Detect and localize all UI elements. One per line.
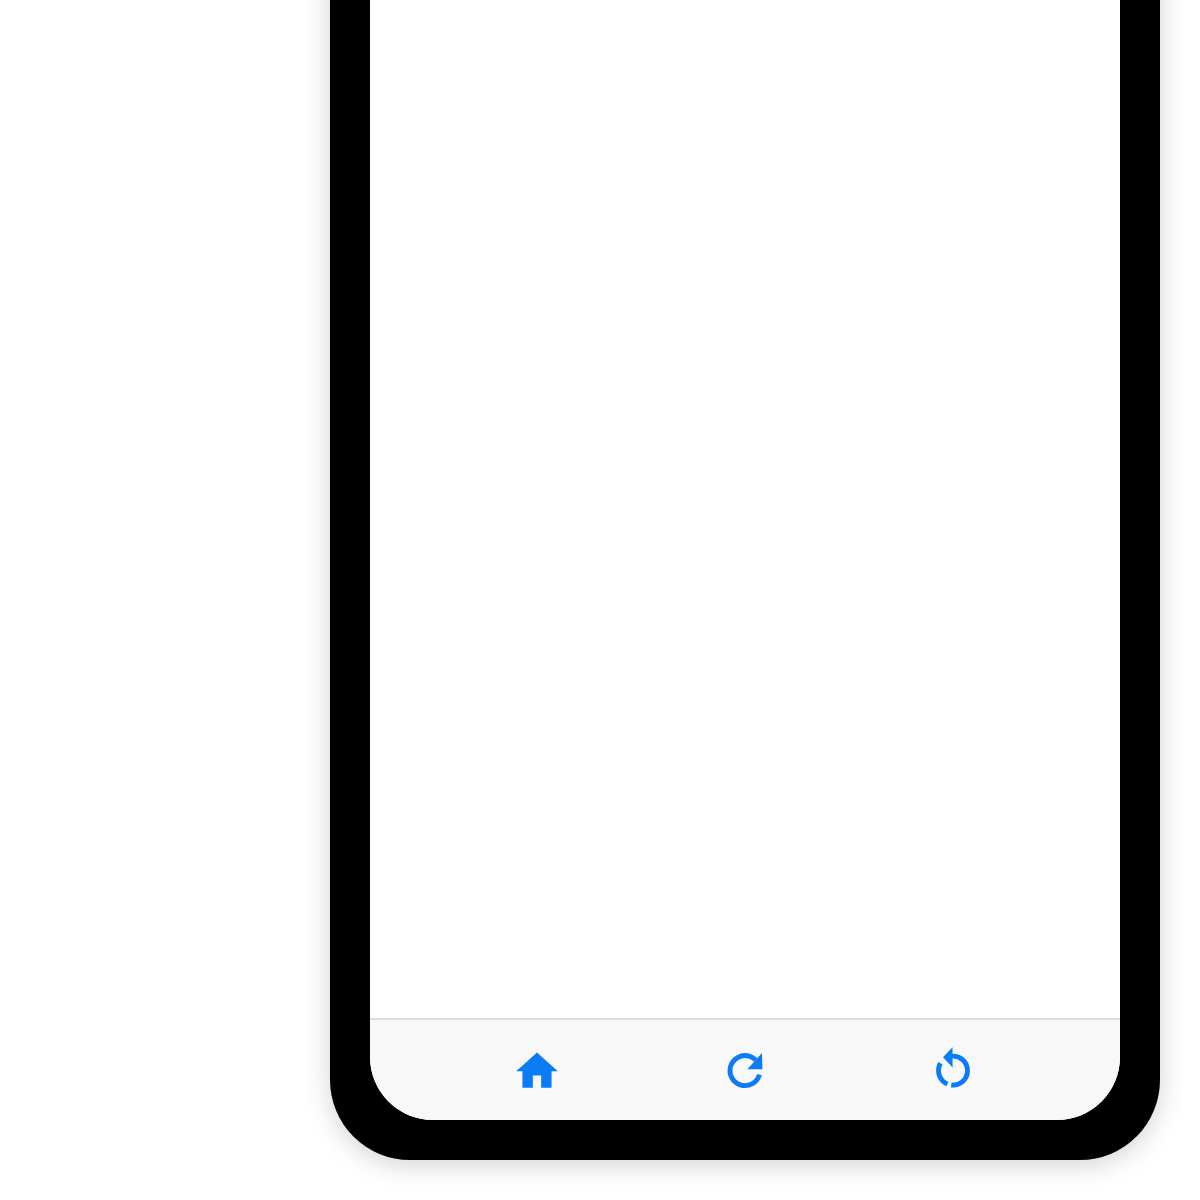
button[interactable]: Home (509, 1043, 565, 1099)
button[interactable]: Refresh (717, 1043, 773, 1099)
button[interactable]: Restore (925, 1043, 981, 1099)
